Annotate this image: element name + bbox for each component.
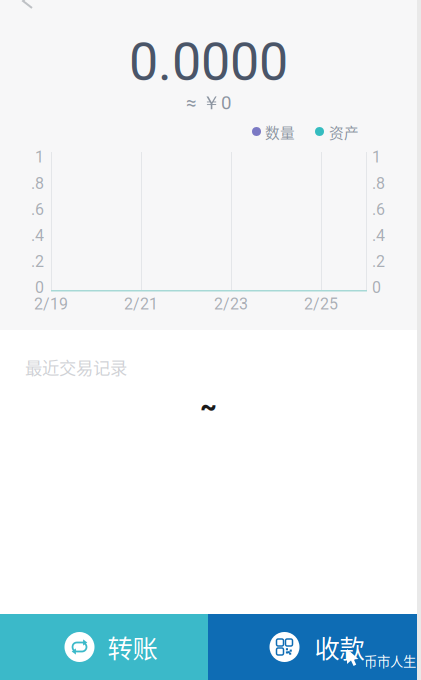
staticText: 转账: [107, 629, 157, 665]
staticText: .4: [31, 226, 44, 245]
staticText: 2/25: [304, 295, 338, 313]
staticText: .2: [372, 252, 385, 271]
staticText: .6: [31, 200, 44, 219]
staticText: ≈ ￥0: [186, 91, 231, 115]
staticText: .8: [31, 174, 44, 193]
staticText: 0.0000: [129, 31, 288, 92]
button[interactable]: 收款: [208, 614, 417, 680]
staticText: 收款: [314, 629, 364, 665]
staticText: .2: [31, 252, 44, 271]
staticText: .4: [372, 226, 385, 245]
staticText: 2/23: [214, 295, 248, 313]
staticText: 0: [35, 278, 44, 297]
staticText: 1: [35, 148, 44, 166]
staticText: 1: [372, 148, 381, 166]
staticText: 资产: [329, 121, 359, 143]
staticText: ~: [199, 390, 217, 422]
staticText: .6: [372, 200, 385, 219]
staticText: 币市人生: [364, 651, 416, 671]
staticText: 0: [372, 278, 381, 297]
staticText: 2/19: [34, 295, 68, 313]
staticText: .8: [372, 174, 385, 193]
staticText: 2/21: [124, 295, 158, 313]
button[interactable]: 转账: [0, 614, 208, 680]
staticText: 数量: [265, 121, 295, 143]
staticText: 最近交易记录: [25, 354, 127, 380]
